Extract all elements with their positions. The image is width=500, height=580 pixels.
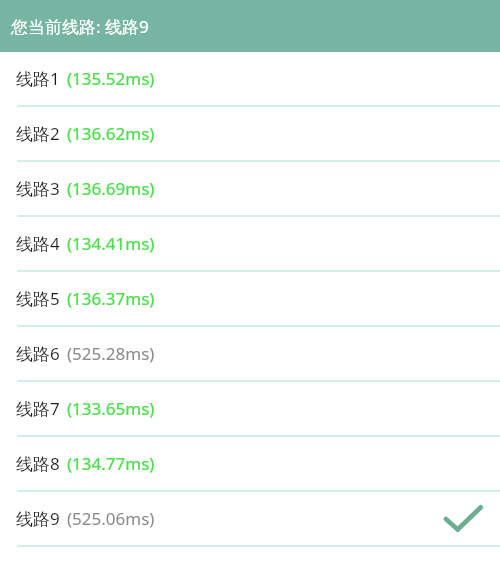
- button[interactable]: 线路8: [0, 437, 500, 492]
- button[interactable]: 您当前线路: 线路9: [0, 0, 500, 52]
- staticText: 线路3: [16, 177, 60, 200]
- staticText: 线路2: [16, 122, 60, 145]
- staticText: 您当前线路: 线路9: [11, 15, 149, 38]
- staticText: (136.37ms): [67, 287, 155, 310]
- staticText: (136.62ms): [67, 122, 155, 145]
- button[interactable]: 线路3: [0, 162, 500, 217]
- button[interactable]: 线路5: [0, 272, 500, 327]
- staticText: 线路5: [16, 287, 60, 310]
- staticText: (134.77ms): [67, 452, 155, 475]
- staticText: (525.06ms): [67, 507, 155, 530]
- staticText: (134.41ms): [67, 232, 155, 255]
- staticText: 线路9: [16, 507, 60, 530]
- staticText: (136.69ms): [67, 177, 155, 200]
- staticText: (525.28ms): [67, 342, 155, 365]
- other: Selected line: [444, 504, 482, 534]
- button[interactable]: 线路9: [0, 492, 500, 547]
- button[interactable]: 线路1: [0, 52, 500, 107]
- staticText: 线路1: [16, 67, 60, 90]
- button[interactable]: 线路4: [0, 217, 500, 272]
- staticText: 线路6: [16, 342, 60, 365]
- button[interactable]: 线路2: [0, 107, 500, 162]
- staticText: 线路7: [16, 397, 60, 420]
- staticText: 线路8: [16, 452, 60, 475]
- button[interactable]: 线路6: [0, 327, 500, 382]
- button[interactable]: 线路7: [0, 382, 500, 437]
- staticText: (135.52ms): [67, 67, 155, 90]
- staticText: 线路4: [16, 232, 60, 255]
- staticText: (133.65ms): [67, 397, 155, 420]
